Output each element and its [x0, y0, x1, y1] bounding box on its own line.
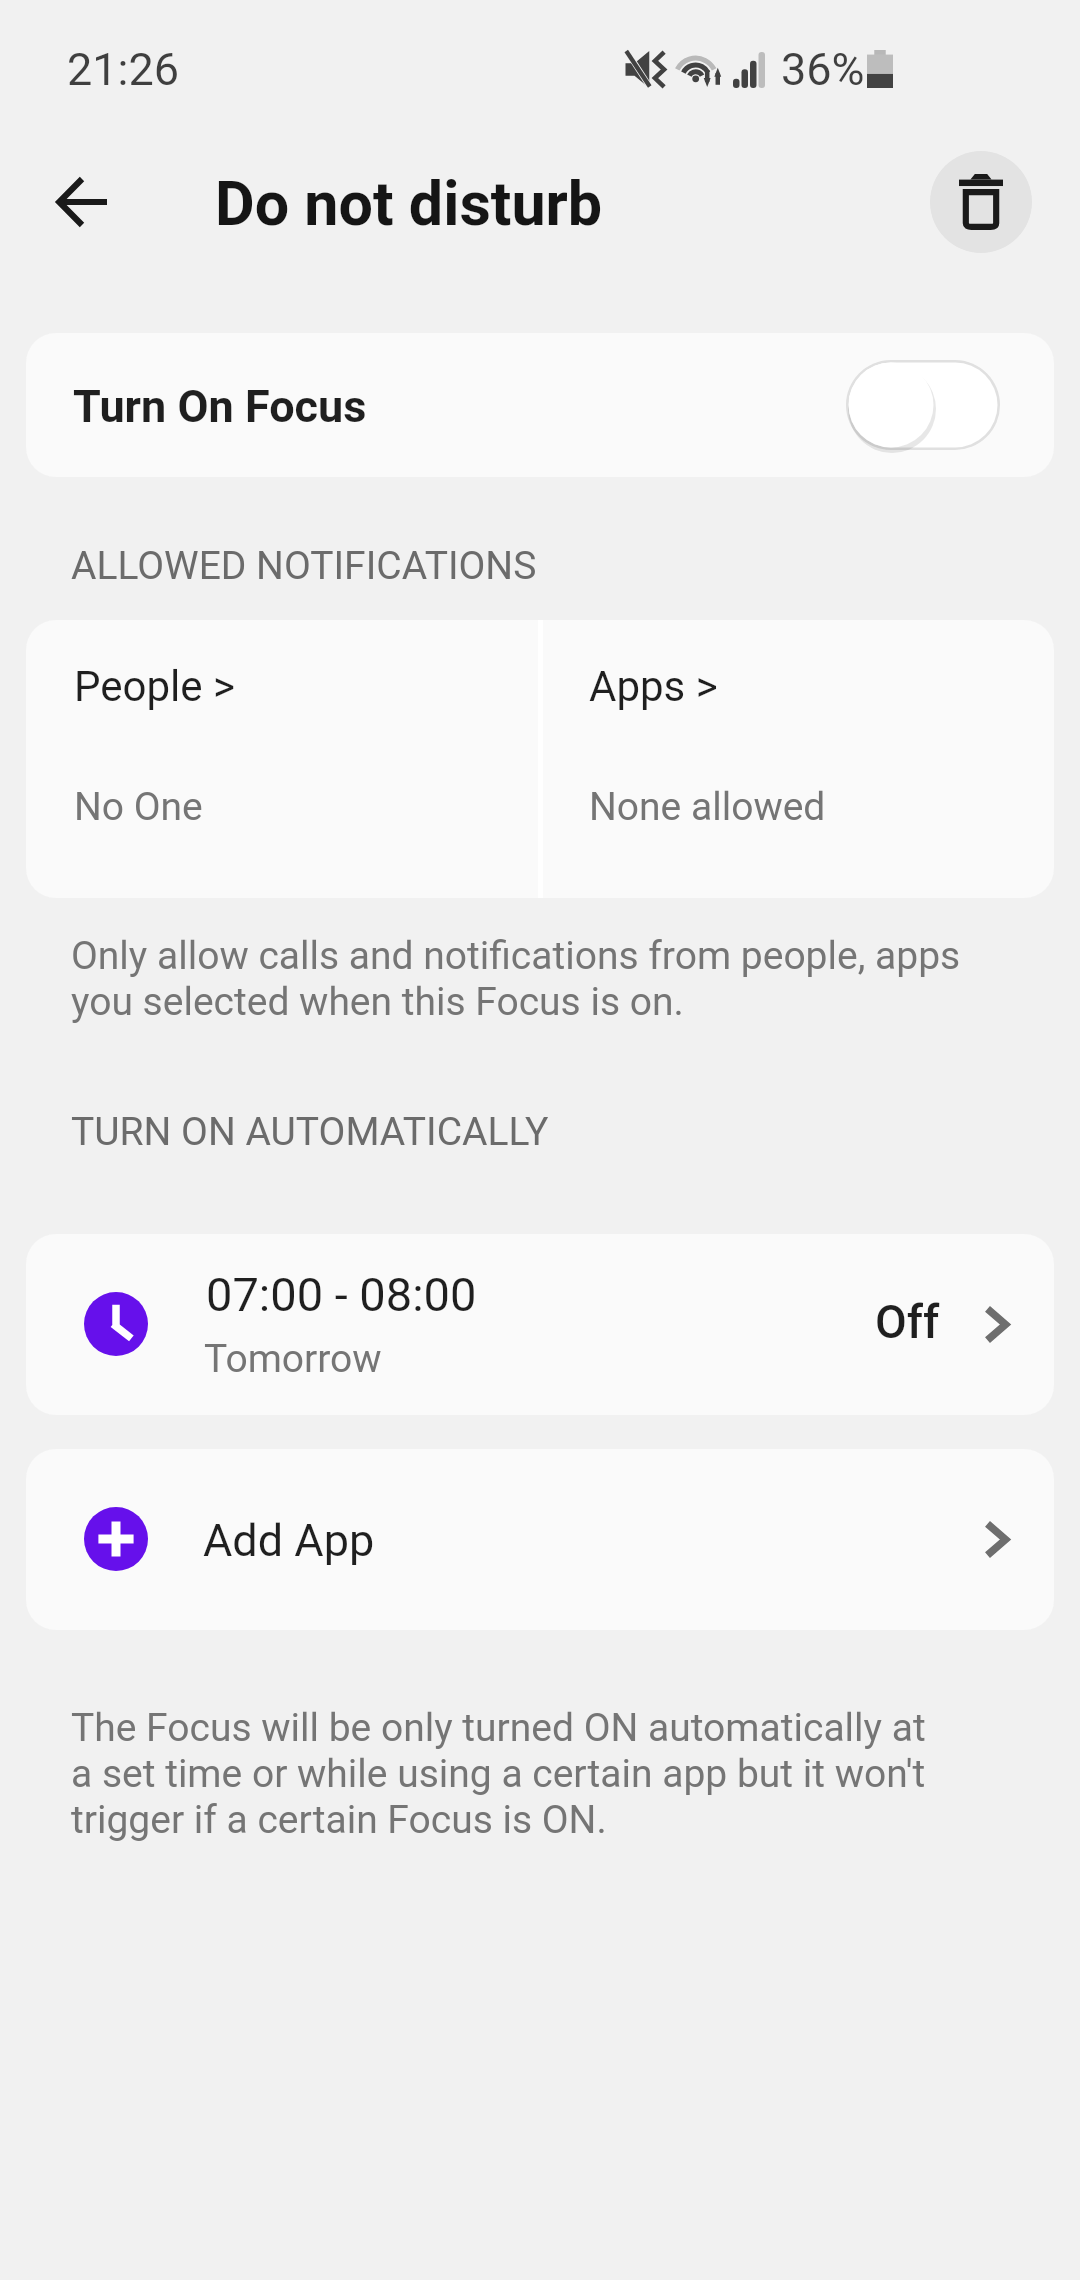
staticText: TURN ON AUTOMATICALLY — [71, 1109, 549, 1155]
button[interactable]: Apps > — [541, 620, 1054, 898]
button[interactable]: Navigate up — [34, 154, 130, 250]
staticText: No One — [74, 784, 203, 830]
staticText: Apps > — [589, 662, 718, 711]
button[interactable]: Turn On Focus — [26, 333, 1054, 477]
staticText: The Focus will be only turned ON automat… — [71, 1705, 946, 1843]
staticText: People > — [74, 662, 235, 711]
button[interactable]: Add App — [26, 1449, 1054, 1630]
button[interactable]: 07:00 - 08:00 — [26, 1234, 1054, 1415]
button[interactable]: Delete — [930, 151, 1032, 253]
staticText: Turn On Focus — [73, 380, 367, 433]
staticText: Tomorrow — [204, 1336, 382, 1382]
staticText: Add App — [203, 1514, 375, 1567]
staticText: None allowed — [589, 784, 826, 830]
staticText: Off — [875, 1295, 940, 1349]
staticText: 07:00 - 08:00 — [206, 1267, 477, 1322]
staticText: 21:26 — [67, 43, 180, 96]
staticText: ALLOWED NOTIFICATIONS — [71, 543, 537, 589]
staticText: 36% — [781, 43, 865, 96]
staticText: Only allow calls and notifications from … — [71, 933, 971, 1025]
button[interactable]: People > — [26, 620, 540, 898]
staticText: Do not disturb — [215, 168, 603, 239]
